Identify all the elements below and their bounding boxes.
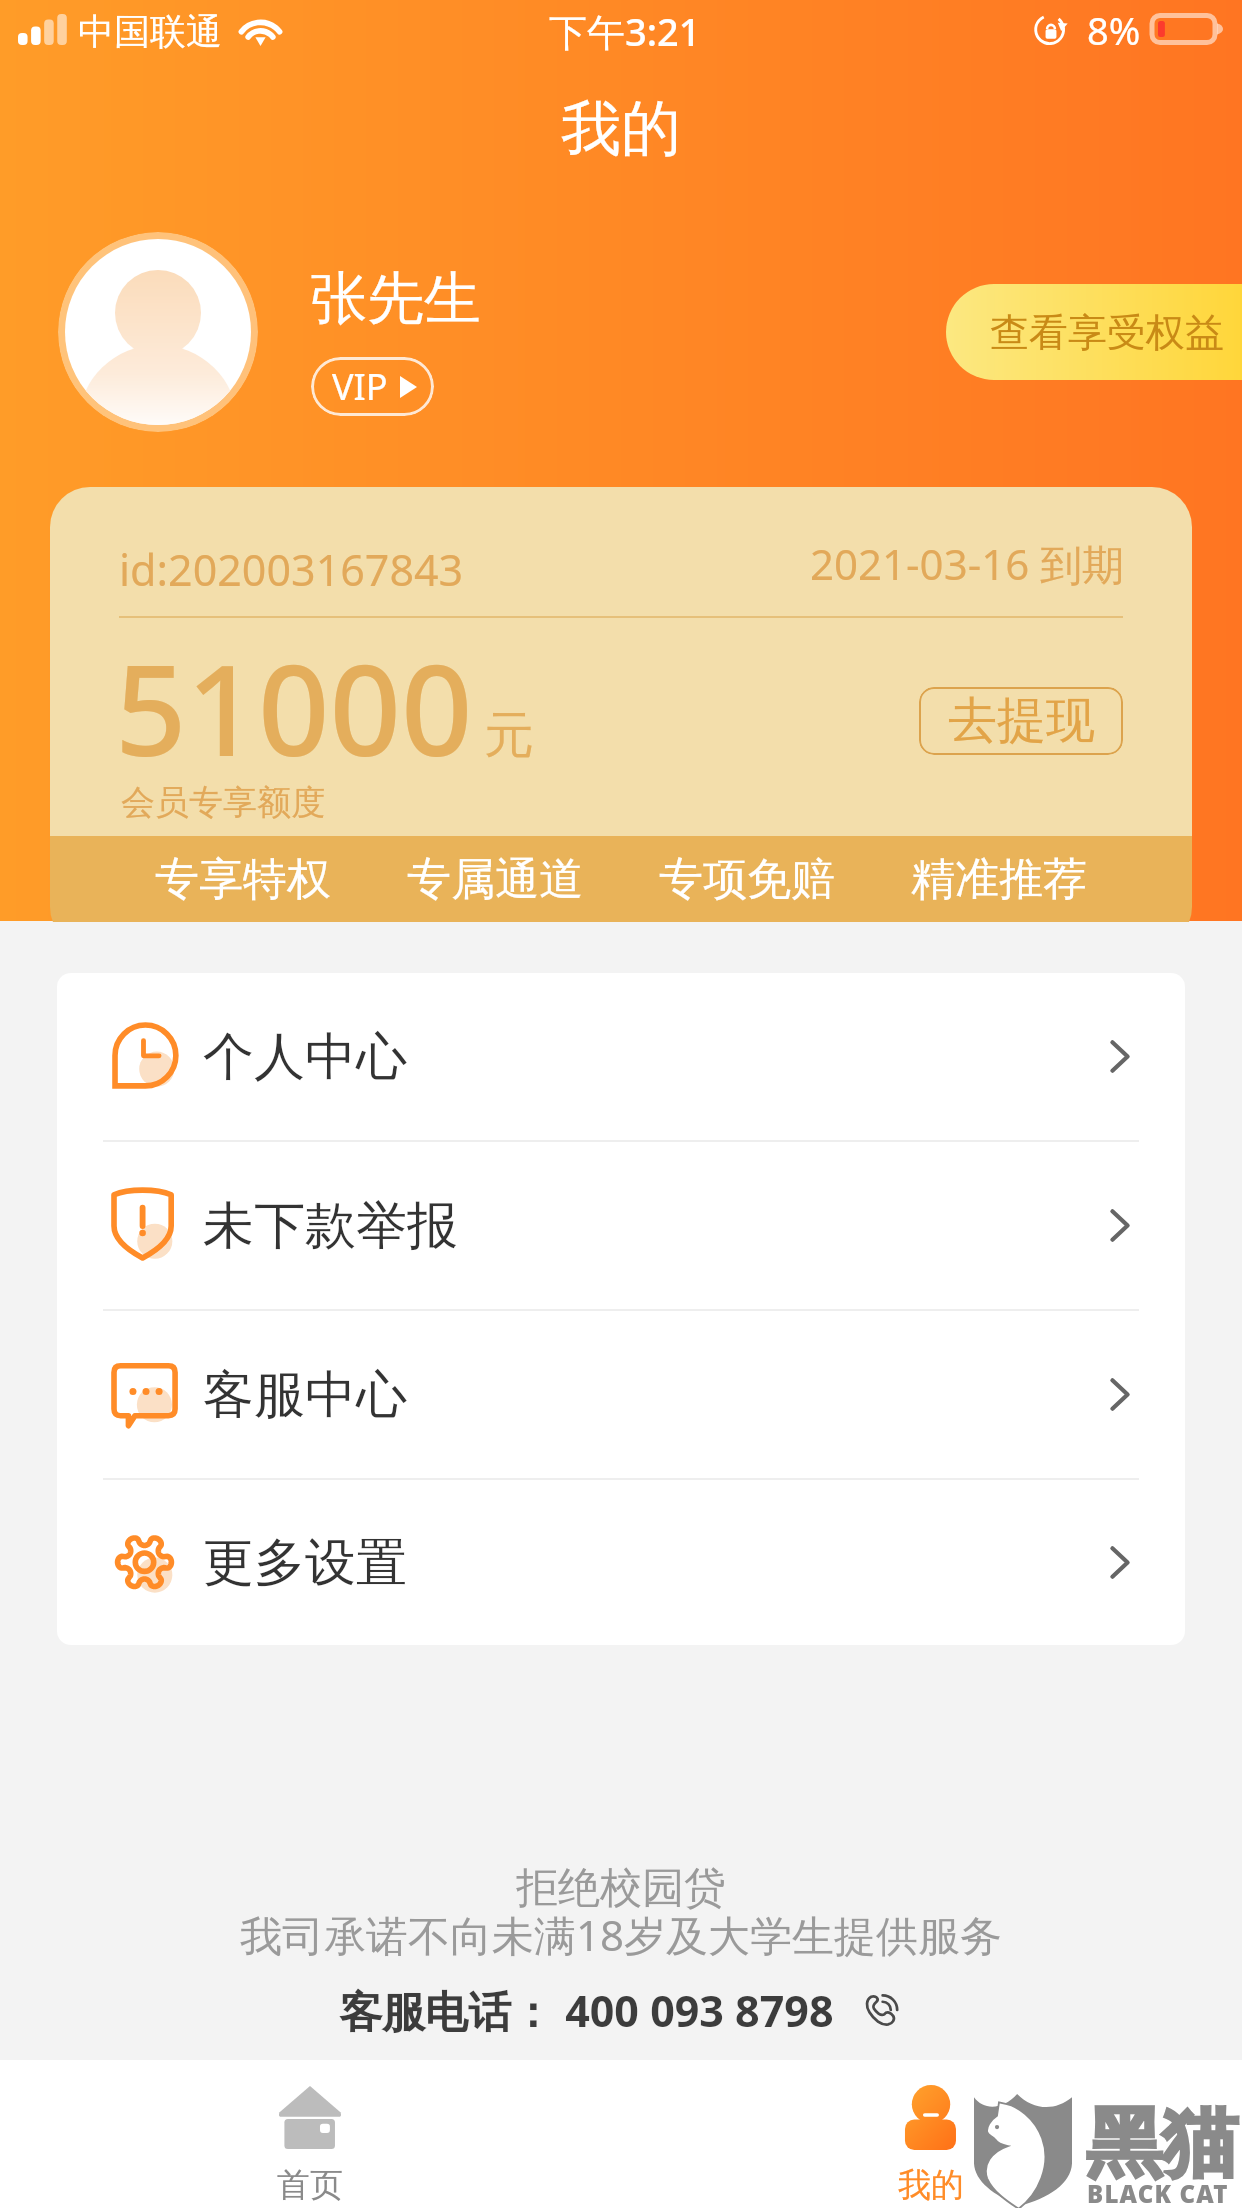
other: Rotation lock [1034, 14, 1068, 48]
staticText: 专项免赔 [659, 852, 835, 907]
staticText: 客服中心 [203, 1363, 407, 1427]
staticText: 查看享受权益 [990, 308, 1224, 357]
button[interactable]: 个人中心 [57, 973, 1185, 1140]
button[interactable]: 客服中心 [57, 1311, 1185, 1478]
staticText: VIP [332, 362, 388, 411]
staticText: 我的 [851, 2164, 1011, 2206]
button[interactable]: VIP [311, 357, 434, 416]
staticText: 2021-03-16 到期 [810, 535, 1125, 592]
staticText: 51000 [115, 622, 473, 792]
button[interactable]: 精准推荐 [911, 836, 1087, 922]
button[interactable]: 未下款举报 [57, 1142, 1185, 1309]
staticText: 8% [1087, 4, 1141, 56]
staticText: 张先生 [310, 263, 481, 335]
staticText: 元 [484, 704, 534, 767]
button[interactable]: 专属通道 [407, 836, 583, 922]
staticText: 我的 [561, 91, 681, 167]
staticText: 专享特权 [155, 852, 331, 907]
staticText: 我司承诺不向未满18岁及大学生提供服务 [240, 1906, 1003, 1963]
button[interactable]: 首页 [186, 2060, 434, 2208]
staticText: 会员专享额度 [121, 781, 325, 824]
staticText: 精准推荐 [911, 852, 1087, 907]
button[interactable]: 我的 [807, 2060, 1055, 2208]
button[interactable]: 专项免赔 [659, 836, 835, 922]
staticText: 客服电话： 400 093 8798 [339, 1981, 834, 2040]
other: Battery 8 percent [1149, 13, 1228, 45]
button[interactable]: 专享特权 [155, 836, 331, 922]
staticText: id:202003167843 [119, 540, 464, 599]
other: Wi-Fi [236, 15, 285, 46]
staticText: 首页 [230, 2164, 390, 2206]
staticText: 黑猫 [1086, 2096, 1238, 2192]
button[interactable]: 查看享受权益 [946, 284, 1242, 380]
staticText: 未下款举报 [203, 1194, 458, 1258]
staticText: 去提现 [948, 690, 1095, 752]
button[interactable]: Profile avatar [58, 232, 258, 432]
staticText: BLACK CAT [1087, 2177, 1229, 2208]
button[interactable]: Call service hotline [860, 1989, 904, 2033]
staticText: 拒绝校园贷 [516, 1862, 726, 1915]
staticText: 更多设置 [203, 1531, 407, 1595]
button[interactable]: 更多设置 [57, 1480, 1185, 1645]
staticText: 个人中心 [203, 1025, 407, 1089]
staticText: 专属通道 [407, 852, 583, 907]
staticText: 中国联通 [78, 9, 222, 54]
staticText: 下午3:21 [549, 5, 701, 57]
button[interactable]: 去提现 [919, 687, 1123, 755]
